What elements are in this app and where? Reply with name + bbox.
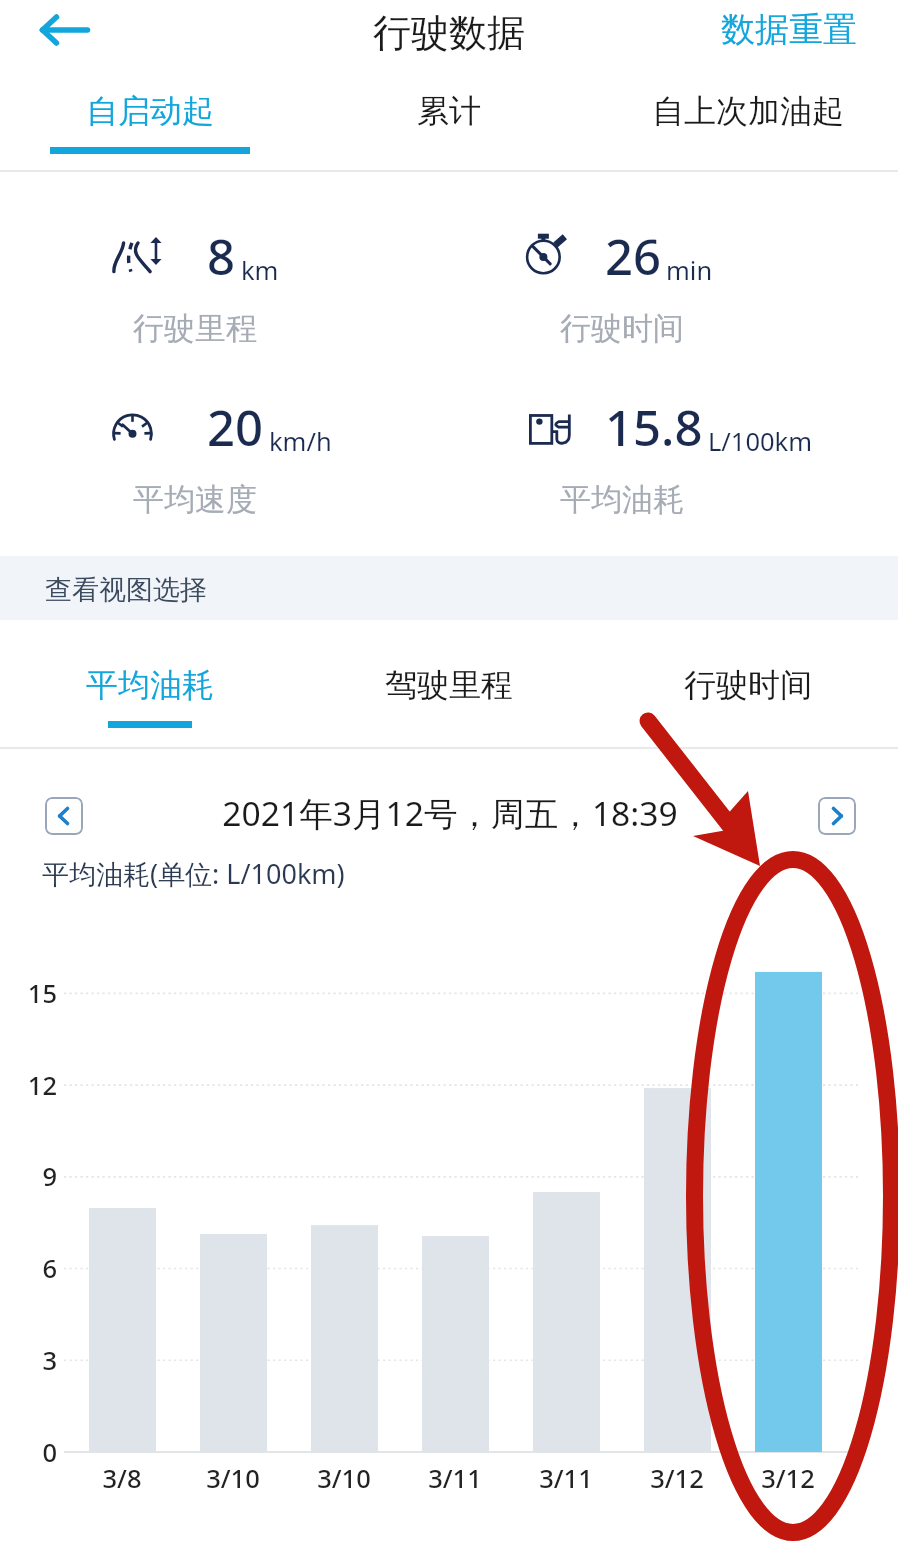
staticText: 3/11 [400,1461,510,1496]
button[interactable]: 驾驶里程 [300,640,598,746]
staticText: 行驶时间 [684,665,812,705]
staticText: 平均油耗(单位: L/100km) [42,855,345,892]
staticText: 行驶里程 [133,309,257,348]
staticText: 查看视图选择 [45,573,207,607]
staticText: 3/10 [178,1461,288,1496]
staticText: 8 [207,223,236,290]
staticText: 3/12 [733,1461,843,1496]
staticText: km [241,253,279,288]
staticText: 3/12 [622,1461,732,1496]
staticText: 行驶时间 [560,309,684,348]
staticText: 26 [605,223,662,290]
staticText: 12 [0,1068,57,1103]
staticText: 2021年3月12号，周五，18:39 [20,790,880,836]
button[interactable]: 行驶时间 [599,640,897,746]
staticText: 驾驶里程 [385,665,513,705]
staticText: 平均速度 [133,480,257,519]
staticText: 3/8 [67,1461,177,1496]
staticText: 自上次加油起 [652,91,844,131]
button[interactable]: 自启动起 [0,76,299,168]
staticText: 3/11 [511,1461,621,1496]
staticText: min [666,253,713,288]
staticText: 15.8 [605,394,703,461]
staticText: 3 [0,1343,57,1378]
staticText: L/100km [708,424,813,459]
button[interactable]: 自上次加油起 [598,76,897,168]
staticText: 累计 [417,91,481,131]
button[interactable]: Next [818,797,856,835]
staticText: 6 [0,1251,57,1286]
button[interactable]: Previous [45,797,83,835]
button[interactable]: Back [24,0,106,58]
staticText: 自启动起 [86,91,214,131]
button[interactable]: 数据重置 [690,2,857,56]
staticText: 3/10 [289,1461,399,1496]
staticText: 15 [0,976,57,1011]
staticText: 9 [0,1159,57,1194]
staticText: 行驶数据 [249,9,649,57]
staticText: km/h [269,424,332,459]
staticText: 20 [207,394,264,461]
staticText: 平均油耗 [560,480,684,519]
button[interactable]: 累计 [299,76,598,168]
button[interactable]: 平均油耗 [1,640,299,746]
staticText: 数据重置 [721,8,857,51]
staticText: 平均油耗 [86,665,214,705]
staticText: 0 [0,1435,57,1470]
